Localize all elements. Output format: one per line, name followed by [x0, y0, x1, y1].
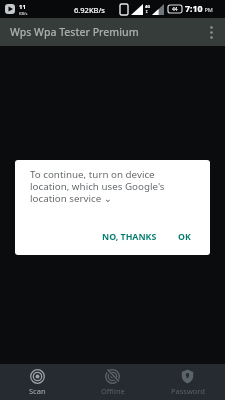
staticText: Password [171, 386, 205, 396]
staticText: 6.92KB/s [74, 5, 105, 15]
staticText: 44 [172, 6, 178, 13]
staticText: OK [178, 231, 191, 243]
staticText: 4G [145, 4, 151, 9]
staticText: Wps Wpa Tester Premium [10, 25, 139, 39]
staticText: 7:10 [185, 3, 203, 15]
staticText: To continue, turn on device location, wh… [30, 168, 165, 205]
button[interactable]: OK [172, 225, 197, 249]
staticText: Offline [101, 386, 125, 396]
staticText: Scan [29, 386, 46, 396]
button[interactable]: Password [150, 364, 225, 400]
staticText: ↕ [145, 9, 149, 14]
staticText: 11 [19, 3, 26, 11]
button[interactable]: Scan [0, 364, 75, 400]
button[interactable]: Offline [75, 364, 150, 400]
button[interactable]: NO, THANKS [96, 225, 163, 249]
staticText: PM [203, 6, 213, 13]
button[interactable] [197, 18, 225, 46]
staticText: NO, THANKS [102, 231, 157, 243]
staticText: KB/s [19, 11, 28, 16]
